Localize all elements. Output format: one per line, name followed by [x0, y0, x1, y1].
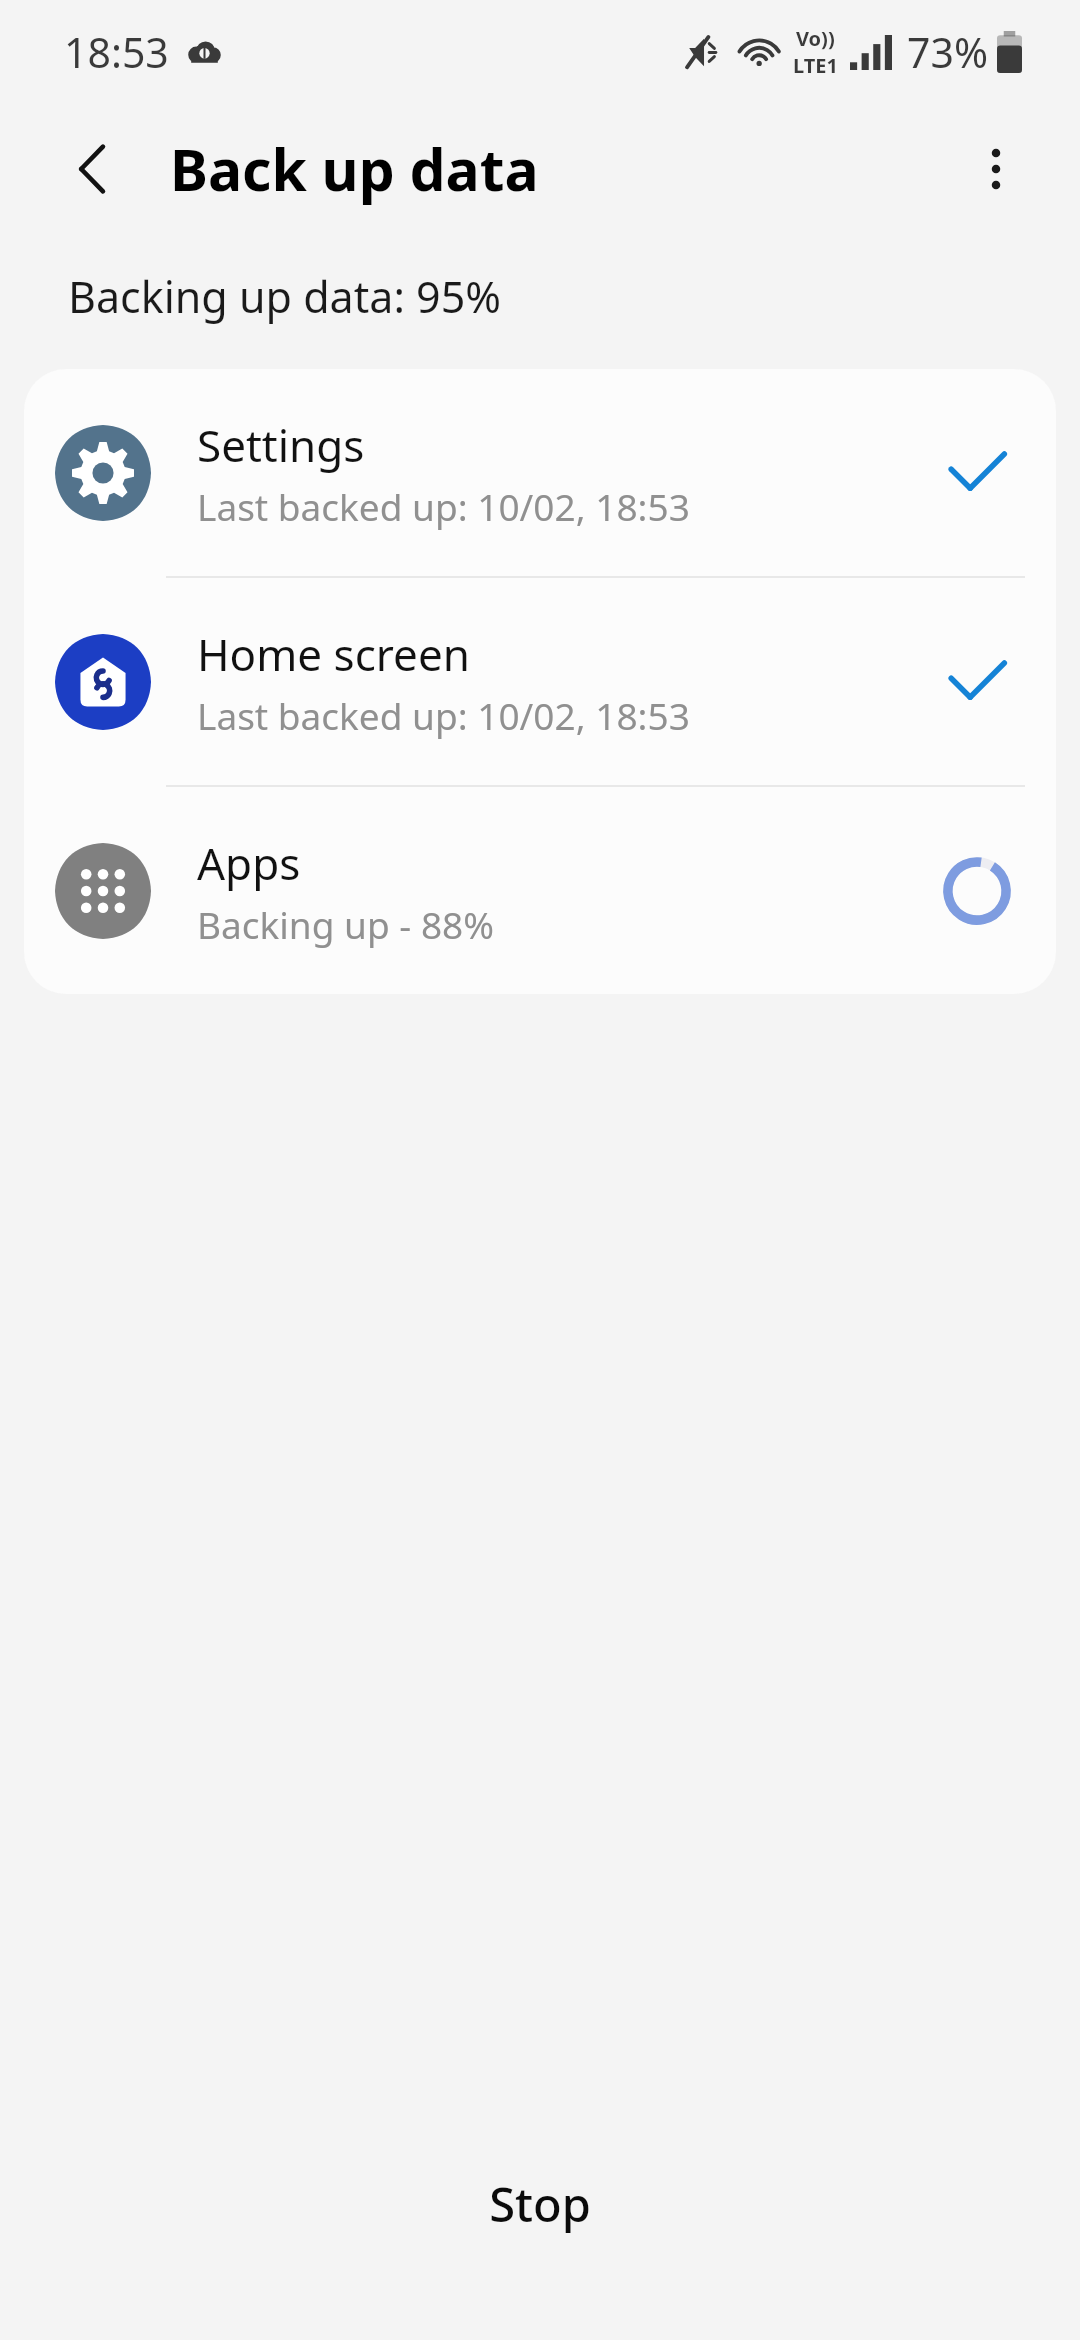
- other: Backing up: [939, 853, 1015, 929]
- staticText: Vo)): [796, 25, 835, 52]
- staticText: Backing up - 88%: [197, 899, 494, 949]
- staticText: 18:53: [64, 24, 169, 80]
- button[interactable]: Home screen: [24, 578, 1056, 785]
- button[interactable]: More options: [948, 121, 1044, 217]
- staticText: Settings: [197, 415, 365, 475]
- staticText: Backing up data: 95%: [68, 267, 502, 326]
- staticText: Back up data: [170, 130, 539, 208]
- staticText: LTE1: [793, 52, 838, 79]
- other: Backed up: [939, 435, 1015, 511]
- button[interactable]: Stop: [0, 2118, 1080, 2290]
- staticText: Last backed up: 10/02, 18:53: [197, 481, 690, 531]
- button[interactable]: Back: [46, 121, 142, 217]
- staticText: Last backed up: 10/02, 18:53: [197, 690, 690, 740]
- staticText: 73%: [907, 24, 988, 80]
- staticText: Home screen: [197, 624, 470, 684]
- button[interactable]: Settings: [24, 369, 1056, 576]
- staticText: Stop: [489, 2172, 591, 2236]
- button[interactable]: Apps: [24, 787, 1056, 994]
- other: Backed up: [939, 644, 1015, 720]
- staticText: Apps: [197, 833, 301, 893]
